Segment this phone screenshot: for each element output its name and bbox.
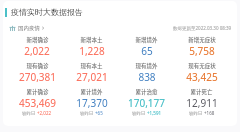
staticText: +168	[204, 110, 215, 116]
button[interactable]: 累计境外	[64, 88, 119, 116]
other: Domestic epidemic	[9, 25, 16, 32]
button[interactable]: 累计治愈	[119, 88, 174, 116]
button[interactable]: 现有境外	[119, 62, 174, 84]
button[interactable]: 现有无症状	[174, 62, 229, 84]
button[interactable]: 现有本土	[64, 62, 119, 84]
button[interactable]: 累计确诊	[10, 88, 64, 116]
staticText: +65	[95, 110, 103, 116]
staticText: ›	[42, 23, 45, 33]
button[interactable]: 新增境外	[119, 36, 174, 58]
staticText: 较昨日	[80, 110, 95, 116]
staticText: 270,381	[19, 70, 56, 84]
staticText: 2,022	[24, 44, 50, 58]
staticText: 较昨日	[189, 110, 204, 116]
staticText: +1,591	[147, 110, 162, 116]
staticText: 累计境外	[80, 88, 103, 96]
staticText: 新增本土	[80, 36, 103, 44]
button[interactable]: 现有确诊	[10, 62, 64, 84]
staticText: 170,177	[128, 96, 165, 110]
staticText: 疫情实时大数据报告	[11, 7, 83, 17]
staticText: 累计治愈	[135, 88, 158, 96]
staticText: 新增无症状	[188, 36, 216, 44]
staticText: 5,758	[189, 44, 215, 58]
staticText: 较昨日	[132, 110, 147, 116]
button[interactable]: 新增本土	[64, 36, 119, 58]
staticText: 累计确诊	[26, 88, 49, 96]
staticText: 17,370	[76, 96, 108, 110]
staticText: 数据更新至2022.03.30 08:39	[173, 25, 232, 31]
button[interactable]: 累计死亡	[174, 88, 229, 116]
staticText: 1,228	[79, 44, 105, 58]
staticText: 现有无症状	[188, 62, 216, 70]
staticText: 现有确诊	[26, 62, 49, 70]
button[interactable]: 新增确诊	[10, 36, 64, 58]
button[interactable]: 新增无症状	[174, 36, 229, 58]
button[interactable]: Domestic epidemic	[9, 23, 45, 33]
staticText: 较昨日	[22, 110, 37, 116]
staticText: 新增境外	[135, 36, 158, 44]
staticText: 65	[141, 44, 153, 58]
staticText: 现有本土	[80, 62, 103, 70]
staticText: 453,469	[19, 96, 56, 110]
staticText: 国内疫情	[18, 25, 40, 32]
staticText: 新增确诊	[26, 36, 49, 44]
staticText: 累计死亡	[190, 88, 213, 96]
staticText: 43,425	[186, 70, 218, 84]
staticText: 12,911	[186, 96, 218, 110]
staticText: 838	[138, 70, 156, 84]
staticText: 现有境外	[135, 62, 158, 70]
staticText: 27,021	[76, 70, 108, 84]
staticText: +2,022	[37, 110, 52, 116]
